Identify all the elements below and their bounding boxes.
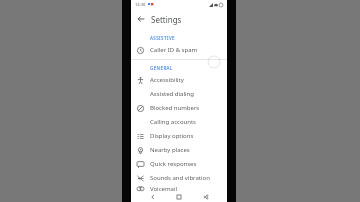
button[interactable]: Sounds and vibration [131,171,227,185]
staticText: 12:30 [135,2,146,7]
button[interactable]: Home [174,192,184,202]
button[interactable]: Caller ID & spam [131,43,227,57]
staticText: Caller ID & spam [150,46,198,54]
staticText: ASSISTIVE [150,35,175,41]
button[interactable]: Back [148,192,158,202]
staticText: Blocked numbers [150,104,200,112]
button[interactable]: Display options [131,129,227,143]
staticText: Assisted dialing [150,90,194,98]
button[interactable]: Blocked numbers [131,101,227,115]
button[interactable]: Quick responses [131,157,227,171]
button[interactable]: Accessibility [131,73,227,87]
staticText: Quick responses [150,160,197,168]
staticText: Display options [150,132,194,140]
button[interactable]: Nearby places [131,143,227,157]
button[interactable]: Assisted dialing [131,87,227,101]
staticText: Calling accounts [150,118,196,126]
button[interactable]: Navigate up [131,9,151,29]
staticText: Sounds and vibration [150,174,210,182]
staticText: Accessibility [150,76,184,84]
button[interactable]: Calling accounts [131,115,227,129]
button[interactable]: Voicemail [131,185,227,192]
staticText: Settings [151,14,182,25]
staticText: GENERAL [150,65,173,71]
staticText: Nearby places [150,146,190,154]
staticText: Voicemail [150,185,177,192]
button[interactable]: Overview [201,192,211,202]
